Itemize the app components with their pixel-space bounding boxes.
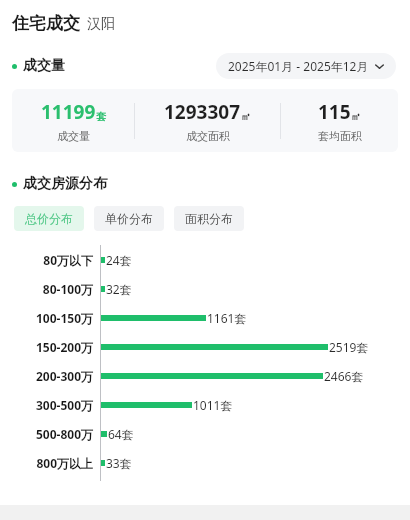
- staticText: 200-300万: [35, 368, 93, 384]
- button[interactable]: Select date range: [216, 53, 396, 79]
- button[interactable]: 500-800万: [0, 419, 410, 448]
- staticText: 32套: [106, 281, 132, 297]
- staticText: 面积分布: [185, 211, 233, 226]
- staticText: ㎡: [241, 110, 251, 123]
- button[interactable]: 总价分布: [14, 206, 84, 231]
- staticText: 150-200万: [35, 339, 93, 355]
- staticText: 住宅成交: [12, 13, 80, 34]
- staticText: 总价分布: [25, 211, 73, 226]
- staticText: 115: [318, 99, 351, 125]
- staticText: 64套: [108, 426, 134, 442]
- button[interactable]: 800万以上: [0, 448, 410, 477]
- button[interactable]: 11199: [12, 89, 398, 152]
- staticText: 1011套: [193, 397, 233, 413]
- staticText: 800万以上: [36, 455, 93, 471]
- staticText: 2025年01月 - 2025年12月: [228, 58, 369, 74]
- staticText: 成交面积: [186, 129, 230, 143]
- staticText: 套均面积: [318, 129, 362, 143]
- button[interactable]: 150-200万: [0, 332, 410, 361]
- staticText: 33套: [106, 455, 132, 471]
- staticText: 1293307: [164, 99, 241, 125]
- staticText: 500-800万: [35, 426, 93, 442]
- staticText: 成交房源分布: [23, 175, 107, 193]
- staticText: 汉阳: [87, 15, 115, 33]
- staticText: 11199: [41, 99, 96, 125]
- staticText: 1161套: [207, 310, 247, 326]
- button[interactable]: 200-300万: [0, 361, 410, 390]
- button[interactable]: 面积分布: [174, 206, 244, 231]
- staticText: 100-150万: [35, 310, 93, 326]
- staticText: 80-100万: [42, 281, 93, 297]
- staticText: 24套: [106, 252, 132, 268]
- staticText: 2466套: [324, 368, 364, 384]
- staticText: 成交量: [57, 129, 90, 143]
- button[interactable]: 单价分布: [94, 206, 164, 231]
- button[interactable]: 80-100万: [0, 274, 410, 303]
- button[interactable]: 100-150万: [0, 303, 410, 332]
- staticText: 300-500万: [35, 397, 93, 413]
- staticText: 单价分布: [105, 211, 153, 226]
- staticText: 2519套: [329, 339, 369, 355]
- button[interactable]: 300-500万: [0, 390, 410, 419]
- staticText: 成交量: [23, 57, 65, 75]
- staticText: 80万以下: [43, 252, 93, 268]
- button[interactable]: 80万以下: [0, 245, 410, 274]
- staticText: 套: [96, 110, 106, 123]
- staticText: ㎡: [351, 110, 361, 123]
